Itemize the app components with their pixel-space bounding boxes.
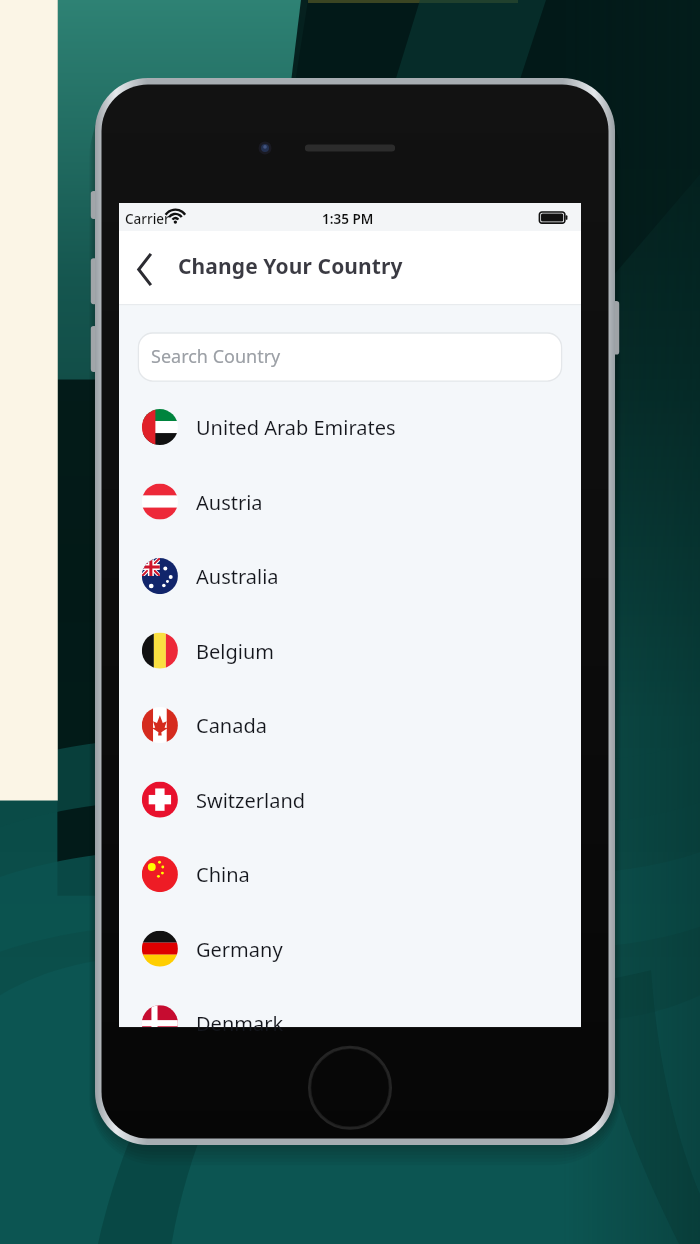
button[interactable]: China: [119, 837, 581, 911]
staticText: China: [196, 861, 250, 888]
button[interactable]: Back: [128, 232, 168, 278]
button[interactable]: Germany: [119, 912, 581, 986]
button[interactable]: Austria: [119, 465, 581, 539]
staticText: 1:35 PM: [322, 210, 374, 228]
staticText: United Arab Emirates: [196, 414, 396, 441]
staticText: Austria: [196, 489, 263, 516]
staticText: Germany: [196, 936, 283, 963]
staticText: Canada: [196, 712, 267, 739]
button[interactable]: Switzerland: [119, 763, 581, 837]
button[interactable]: Search Country: [139, 332, 561, 380]
staticText: Search Country: [151, 344, 281, 369]
staticText: Switzerland: [196, 787, 306, 814]
staticText: Carrier: [125, 210, 170, 228]
button[interactable]: Australia: [119, 539, 581, 613]
button[interactable]: United Arab Emirates: [119, 390, 581, 464]
button[interactable]: Belgium: [119, 614, 581, 688]
button[interactable]: Canada: [119, 688, 581, 762]
staticText: Denmark: [196, 1010, 284, 1037]
button[interactable]: Denmark: [119, 986, 581, 1060]
staticText: Australia: [196, 563, 279, 590]
staticText: Change Your Country: [178, 252, 403, 281]
staticText: Belgium: [196, 638, 274, 665]
